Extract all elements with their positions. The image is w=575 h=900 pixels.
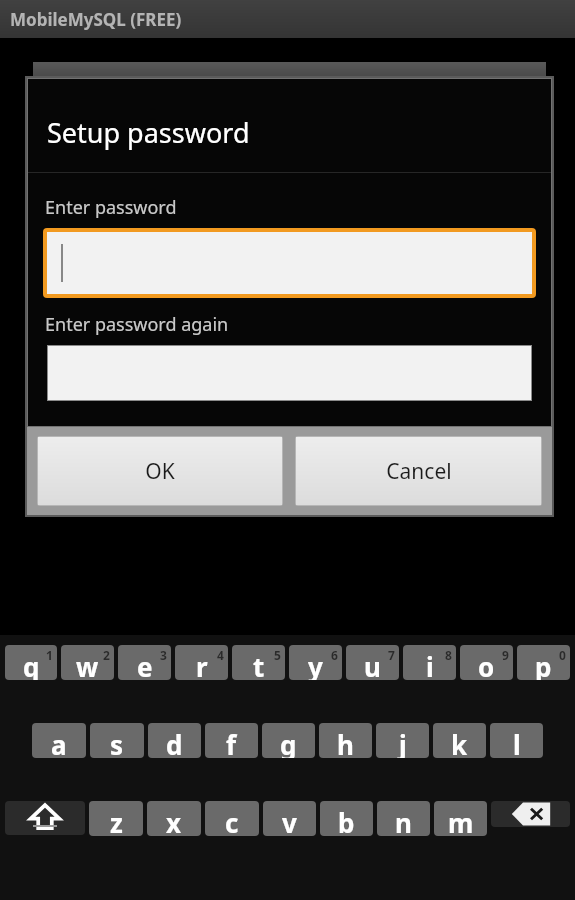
button[interactable]: m bbox=[434, 801, 487, 836]
staticText: 0 bbox=[559, 647, 566, 663]
staticText: j bbox=[399, 727, 407, 758]
staticText: Setup password bbox=[47, 114, 250, 151]
button[interactable]: 2 bbox=[61, 645, 114, 680]
button[interactable]: 5 bbox=[232, 645, 285, 680]
staticText: 1 bbox=[46, 647, 53, 663]
staticText: o bbox=[478, 649, 495, 680]
button[interactable]: x bbox=[147, 801, 201, 836]
button[interactable]: 0 bbox=[517, 645, 570, 680]
button[interactable]: 6 bbox=[289, 645, 342, 680]
staticText: v bbox=[282, 805, 297, 836]
staticText: l bbox=[513, 727, 521, 758]
staticText: u bbox=[364, 649, 381, 680]
staticText: Cancel bbox=[386, 457, 452, 486]
button[interactable]: 7 bbox=[346, 645, 399, 680]
button[interactable]: l bbox=[490, 723, 543, 758]
button[interactable]: a bbox=[32, 723, 86, 758]
button[interactable]: 3 bbox=[118, 645, 171, 680]
staticText: Enter password again bbox=[45, 312, 229, 337]
staticText: p bbox=[535, 649, 552, 680]
staticText: c bbox=[225, 805, 239, 836]
button[interactable] bbox=[47, 232, 532, 294]
button[interactable]: j bbox=[376, 723, 429, 758]
staticText: k bbox=[451, 727, 468, 758]
staticText: 5 bbox=[274, 647, 281, 663]
staticText: OK bbox=[145, 457, 175, 486]
button[interactable]: f bbox=[205, 723, 258, 758]
staticText: MobileMySQL (FREE) bbox=[10, 8, 182, 31]
button[interactable]: OK bbox=[38, 437, 282, 505]
staticText: d bbox=[166, 727, 183, 758]
staticText: 4 bbox=[217, 647, 224, 663]
button[interactable]: 8 bbox=[403, 645, 456, 680]
staticText: 2 bbox=[103, 647, 110, 663]
staticText: m bbox=[448, 805, 474, 836]
button[interactable]: g bbox=[262, 723, 315, 758]
staticText: n bbox=[395, 805, 412, 836]
staticText: 7 bbox=[388, 647, 395, 663]
staticText: r bbox=[196, 649, 208, 680]
staticText: t bbox=[253, 649, 265, 680]
button[interactable]: h bbox=[319, 723, 372, 758]
button[interactable]: Cancel bbox=[296, 437, 541, 505]
staticText: y bbox=[308, 649, 323, 680]
staticText: z bbox=[110, 805, 123, 836]
staticText: i bbox=[426, 649, 434, 680]
staticText: 3 bbox=[160, 647, 167, 663]
button[interactable]: v bbox=[263, 801, 316, 836]
staticText: 9 bbox=[502, 647, 509, 663]
staticText: 6 bbox=[331, 647, 338, 663]
button[interactable]: 1 bbox=[5, 645, 57, 680]
button[interactable]: s bbox=[90, 723, 144, 758]
button[interactable]: z bbox=[89, 801, 143, 836]
staticText: f bbox=[226, 727, 237, 758]
staticText: q bbox=[23, 649, 40, 680]
staticText: x bbox=[166, 805, 182, 836]
button[interactable]: n bbox=[377, 801, 430, 836]
staticText: a bbox=[51, 727, 67, 758]
button[interactable]: 9 bbox=[460, 645, 513, 680]
button[interactable]: k bbox=[433, 723, 486, 758]
staticText: 8 bbox=[445, 647, 452, 663]
staticText: s bbox=[110, 727, 124, 758]
button[interactable]: b bbox=[320, 801, 373, 836]
staticText: g bbox=[280, 727, 297, 758]
staticText: b bbox=[338, 805, 355, 836]
staticText: Enter password bbox=[45, 195, 177, 220]
button[interactable]: Backspace bbox=[491, 801, 570, 827]
button[interactable]: 4 bbox=[175, 645, 228, 680]
button[interactable]: c bbox=[205, 801, 259, 836]
staticText: e bbox=[137, 649, 153, 680]
staticText: h bbox=[337, 727, 354, 758]
staticText: w bbox=[76, 649, 99, 680]
button[interactable]: Shift bbox=[5, 801, 85, 835]
button[interactable]: d bbox=[148, 723, 201, 758]
